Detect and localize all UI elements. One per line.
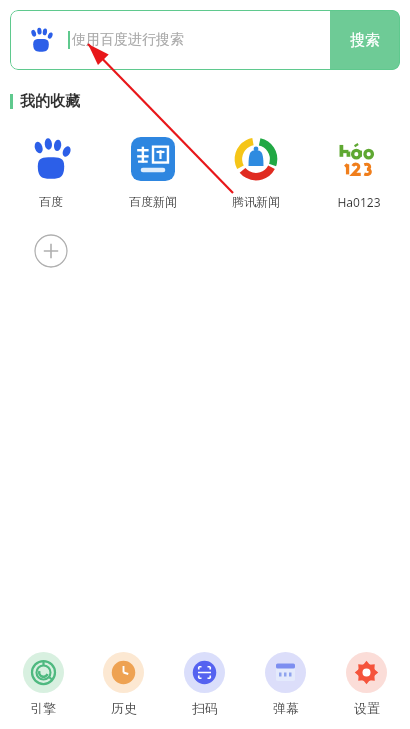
button[interactable]: 引擎 (3, 652, 83, 716)
staticText: 搜索 (350, 31, 380, 50)
staticText: 百度新闻 (129, 194, 177, 209)
staticText: 设置 (354, 700, 380, 716)
staticText: 历史 (111, 700, 137, 716)
staticText: 弹幕 (273, 700, 299, 716)
staticText: 我的收藏 (20, 92, 80, 111)
button[interactable]: 扫码 (164, 652, 245, 716)
staticText: 扫码 (192, 700, 218, 716)
button[interactable]: 弹幕 (245, 652, 326, 716)
button[interactable]: 使用百度进行搜索 (10, 10, 330, 70)
staticText: 百度 (39, 194, 63, 209)
staticText: 引擎 (30, 700, 56, 716)
button[interactable]: Ha0123 (307, 133, 410, 214)
staticText: Ha0123 (337, 194, 381, 210)
button[interactable]: 历史 (83, 652, 164, 716)
button[interactable]: 百度新闻 (102, 133, 204, 213)
button[interactable]: 设置 (326, 652, 407, 716)
staticText: 腾讯新闻 (232, 194, 280, 209)
button[interactable]: 搜索 (330, 10, 400, 70)
staticText: 使用百度进行搜索 (72, 31, 184, 49)
button[interactable]: 腾讯新闻 (204, 133, 307, 213)
button[interactable]: 百度 (0, 133, 102, 213)
button[interactable]: Add favorite (34, 234, 68, 268)
